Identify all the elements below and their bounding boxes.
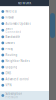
button[interactable]: Routing bbox=[0, 52, 49, 58]
button[interactable]: Devices bbox=[0, 40, 49, 46]
staticText: Automatic Updates bbox=[5, 22, 30, 25]
staticText: Firewall bbox=[5, 16, 14, 19]
button[interactable]: Neighbor Nodes bbox=[0, 58, 49, 64]
staticText: Advanced control bbox=[5, 77, 29, 81]
staticText: Devices bbox=[5, 41, 14, 45]
button[interactable]: Firewall bbox=[0, 15, 49, 21]
button[interactable]: Automatic Updates bbox=[0, 21, 49, 27]
staticText: DNS bbox=[5, 71, 10, 75]
staticText: Status bbox=[5, 27, 12, 30]
staticText: VPN bbox=[5, 83, 11, 87]
staticText: Routing bbox=[5, 53, 17, 57]
staticText: Wireless bbox=[5, 10, 16, 13]
button[interactable]: Proxy bbox=[0, 46, 49, 52]
button[interactable]: Bandwidth bbox=[0, 34, 49, 40]
staticText: Bandwidth bbox=[5, 35, 20, 39]
staticText: Logging bbox=[5, 65, 17, 69]
button[interactable]: Wireless bbox=[0, 8, 49, 14]
button[interactable]: Advanced control bbox=[0, 76, 49, 82]
button[interactable]: Status bbox=[0, 27, 49, 34]
staticText: Connected bbox=[5, 30, 21, 34]
staticText: Premium bbox=[5, 95, 17, 99]
button[interactable]: Subscription bbox=[0, 91, 49, 100]
staticText: Neighbor Nodes bbox=[5, 59, 29, 63]
button[interactable]: DNS bbox=[0, 70, 49, 76]
staticText: Subscription bbox=[5, 92, 22, 95]
button[interactable]: Logging bbox=[0, 64, 49, 70]
staticText: NETWORK bbox=[17, 1, 31, 5]
staticText: Proxy bbox=[5, 47, 12, 51]
button[interactable]: VPN bbox=[0, 82, 49, 88]
